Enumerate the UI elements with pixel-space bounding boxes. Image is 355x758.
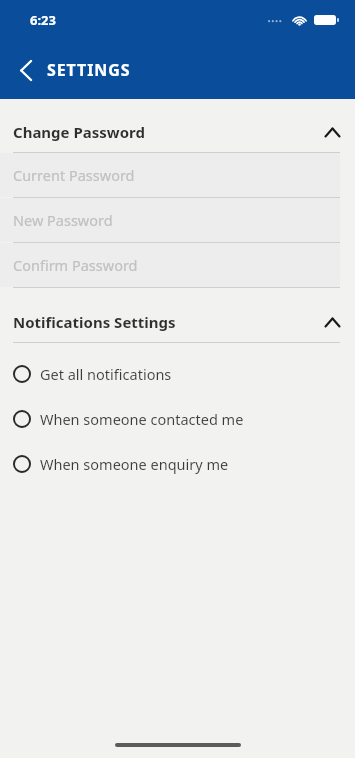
button[interactable]: Get all notifications [0, 351, 355, 396]
button[interactable]: Back [8, 52, 44, 88]
button[interactable]: Change Password [0, 112, 355, 153]
staticText: New Password [13, 210, 113, 230]
staticText: Current Password [13, 165, 135, 185]
button[interactable]: Notifications Settings [0, 302, 355, 343]
staticText: Get all notifications [40, 364, 172, 384]
button[interactable]: Current Password [0, 153, 355, 198]
button[interactable]: Confirm Password [0, 243, 355, 288]
button[interactable]: When someone contacted me [0, 396, 355, 441]
staticText: 6:23 [30, 11, 56, 29]
staticText: When someone enquiry me [40, 454, 229, 474]
button[interactable]: New Password [0, 198, 355, 243]
button[interactable]: When someone enquiry me [0, 441, 355, 486]
staticText: Change Password [13, 122, 325, 142]
staticText: When someone contacted me [40, 409, 244, 429]
staticText: Notifications Settings [13, 312, 325, 332]
staticText: SETTINGS [47, 59, 131, 81]
staticText: Confirm Password [13, 255, 138, 275]
